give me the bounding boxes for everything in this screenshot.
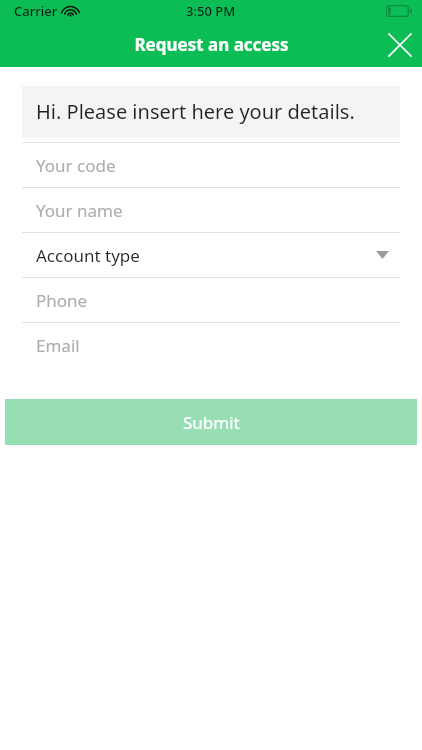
staticText: Hi. Please insert here your details.	[36, 98, 355, 125]
button[interactable]: Account type	[0, 233, 422, 277]
button[interactable]: Submit	[5, 399, 417, 445]
staticText: Submit	[183, 411, 240, 434]
button[interactable]: Close	[377, 22, 422, 67]
staticText: 3:50 PM	[186, 2, 236, 20]
staticText: Carrier	[14, 2, 58, 20]
staticText: Phone	[36, 289, 88, 312]
button[interactable]: Your code	[0, 143, 422, 187]
staticText: Email	[36, 334, 80, 357]
button[interactable]: Phone	[0, 278, 422, 322]
staticText: Your name	[36, 199, 123, 222]
button[interactable]: Email	[0, 323, 422, 367]
staticText: Your code	[36, 154, 116, 177]
button[interactable]: Your name	[0, 188, 422, 232]
staticText: Account type	[36, 244, 140, 267]
staticText: Request an access	[134, 33, 289, 56]
